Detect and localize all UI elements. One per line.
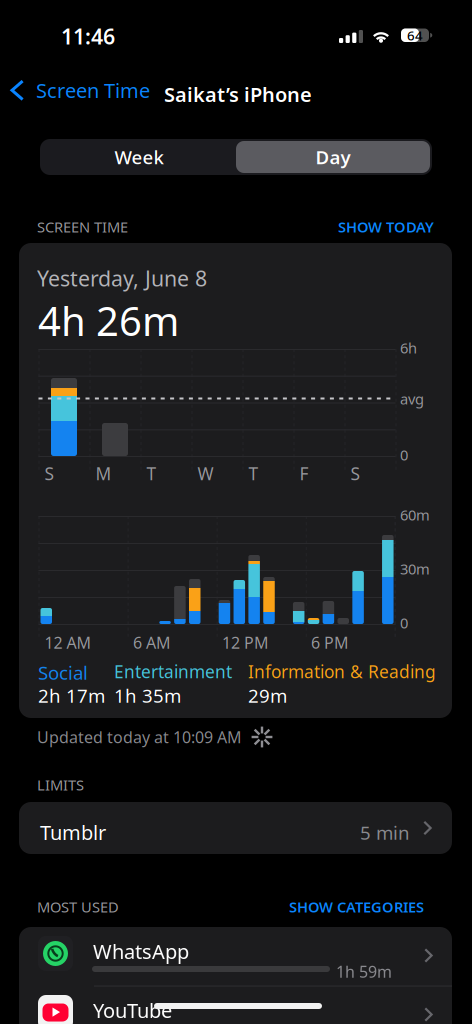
button[interactable]: Screen Time (2, 66, 158, 115)
staticText: SHOW TODAY (338, 217, 434, 236)
staticText: 4h 26m (38, 294, 179, 347)
staticText: Screen Time (36, 77, 150, 104)
staticText: 5 min (360, 820, 410, 845)
staticText: 6 PM (311, 632, 349, 653)
staticText: 0 (400, 445, 408, 464)
staticText: Updated today at 10:09 AM (37, 726, 242, 748)
staticText: 60m (400, 505, 430, 524)
button[interactable]: SHOW CATEGORIES (283, 893, 430, 920)
staticText: Week (114, 145, 163, 169)
button[interactable]: WhatsApp (19, 927, 452, 985)
staticText: SCREEN TIME (37, 217, 128, 236)
staticText: F (299, 462, 308, 485)
staticText: Information & Reading (248, 660, 436, 683)
staticText: 2h 17m (38, 683, 105, 708)
button[interactable]: SHOW TODAY (332, 213, 440, 240)
staticText: WhatsApp (93, 938, 189, 965)
staticText: 0 (400, 613, 408, 632)
staticText: 64 (407, 26, 423, 44)
staticText: MOST USED (37, 897, 119, 916)
staticText: 11:46 (61, 22, 115, 50)
staticText: 12 AM (44, 632, 91, 653)
staticText: Entertainment (114, 660, 232, 683)
staticText: S (350, 462, 360, 485)
staticText: YouTube (93, 997, 172, 1024)
staticText: avg (400, 389, 424, 408)
staticText: 1h 59m (336, 961, 392, 982)
staticText: T (146, 462, 156, 485)
button[interactable]: Day (236, 141, 430, 173)
staticText: M (95, 462, 111, 485)
staticText: W (197, 462, 213, 485)
staticText: Social (38, 660, 88, 685)
staticText: 6 AM (133, 632, 171, 653)
staticText: 30m (400, 559, 430, 578)
staticText: LIMITS (37, 775, 84, 794)
staticText: Day (315, 145, 350, 169)
staticText: 1h 35m (114, 683, 181, 708)
staticText: Saikat’s iPhone (164, 81, 312, 108)
staticText: SHOW CATEGORIES (289, 897, 424, 916)
button[interactable]: YouTube (19, 986, 452, 1024)
staticText: 12 PM (222, 632, 269, 653)
staticText: 29m (248, 683, 287, 708)
staticText: 6h (400, 338, 417, 357)
button[interactable]: Week (42, 141, 236, 173)
button[interactable]: Tumblr (19, 802, 452, 854)
staticText: S (44, 462, 54, 485)
staticText: Yesterday, June 8 (37, 264, 207, 292)
staticText: T (248, 462, 258, 485)
staticText: Tumblr (40, 819, 106, 846)
